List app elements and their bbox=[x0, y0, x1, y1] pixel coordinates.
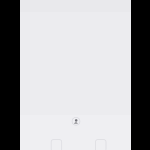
button[interactable]: Account bbox=[70, 115, 82, 127]
button[interactable]: Item bbox=[51, 140, 62, 150]
